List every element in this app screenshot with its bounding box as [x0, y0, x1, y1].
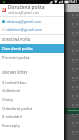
staticText: 16:41: [69, 0, 78, 4]
staticText: vdaklove@gmail.com: [6, 27, 42, 32]
staticText: Doručená pošta: [8, 4, 45, 11]
button[interactable]: Doručená pošta: [0, 44, 64, 53]
staticText: Odložené: [2, 88, 21, 94]
staticText: VŠECHNY ŠTÍTKY: [2, 71, 28, 75]
staticText: M: [2, 8, 6, 12]
staticText: Chaty: [2, 97, 13, 103]
staticText: K odeslání: [2, 114, 22, 120]
staticText: DORUČENÁ POŠTA: [2, 38, 31, 42]
button[interactable]: Prioritní pošta: [0, 53, 64, 62]
staticText: S hvězdičkou: [2, 80, 27, 86]
staticText: sdskovaj@gmail.com: [8, 11, 40, 15]
button[interactable]: vdaklove@gmail.com: [0, 25, 64, 34]
staticText: Odeslaná pošta: [2, 106, 32, 112]
button[interactable]: sdskovaj@gmail.com: [0, 17, 64, 26]
button[interactable]: Koncepty: [0, 121, 64, 130]
button[interactable]: Chaty: [0, 95, 64, 104]
button[interactable]: Odeslaná pošta: [0, 104, 64, 113]
button[interactable]: S hvězdičkou: [0, 78, 64, 87]
staticText: sdskovaj@gmail.com: [6, 19, 42, 24]
button[interactable]: K odeslání: [0, 112, 64, 121]
button[interactable]: Odložené: [0, 86, 64, 95]
staticText: Prioritní pošta: [2, 55, 30, 61]
staticText: Koncepty: [2, 123, 20, 129]
button[interactable]: M: [0, 4, 64, 15]
staticText: Doručená pošta: [2, 46, 33, 52]
